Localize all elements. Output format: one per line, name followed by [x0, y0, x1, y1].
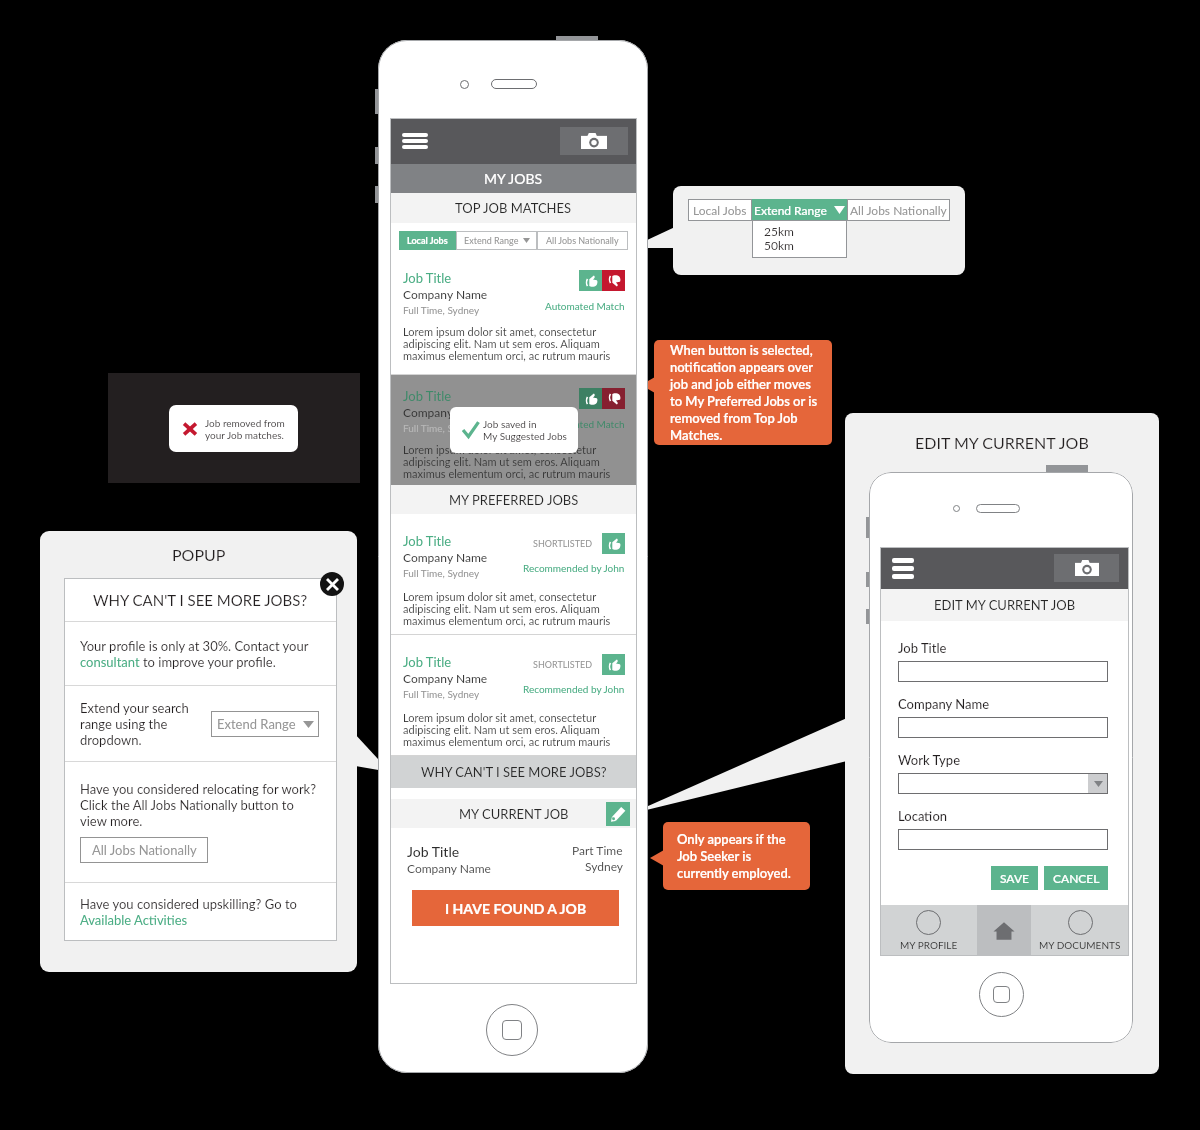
- staticText: WHY CAN'T I SEE MORE JOBS?: [421, 764, 607, 780]
- button[interactable]: Like job: [579, 270, 602, 291]
- button[interactable]: [898, 661, 1108, 682]
- staticText: Company Name: [407, 861, 491, 875]
- button[interactable]: Dislike job: [602, 270, 625, 291]
- staticText: Local Jobs: [693, 203, 747, 217]
- staticText: EDIT MY CURRENT JOB: [915, 433, 1089, 452]
- staticText: All Jobs Nationally: [850, 203, 947, 217]
- button[interactable]: Camera: [1054, 554, 1119, 582]
- staticText: Lorem ipsum dolor sit amet, consectetur …: [403, 711, 611, 748]
- staticText: MY PROFILE: [900, 939, 958, 951]
- staticText: Full Time, Sydney: [403, 567, 480, 579]
- staticText: Full Time, Sydney: [403, 304, 480, 316]
- button[interactable]: I HAVE FOUND A JOB: [412, 890, 619, 926]
- staticText: Automated Match: [545, 300, 625, 312]
- staticText: MY PREFERRED JOBS: [449, 492, 579, 508]
- staticText: Job saved in: [483, 418, 537, 430]
- button[interactable]: Shortlisted: [602, 654, 625, 675]
- staticText: Extend Range: [754, 203, 827, 217]
- staticText: Extend Range: [217, 716, 296, 732]
- staticText: Lorem ipsum dolor sit amet, consectetur …: [403, 443, 611, 480]
- button[interactable]: Job Title: [390, 375, 637, 485]
- staticText: MY DOCUMENTS: [1039, 939, 1121, 951]
- button[interactable]: Camera: [560, 127, 628, 155]
- button[interactable]: Home: [977, 905, 1031, 956]
- staticText: Company Name: [898, 696, 990, 712]
- staticText: Only appears if the Job Seeker is curren…: [677, 831, 791, 881]
- button[interactable]: MY PREFERRED JOBS: [390, 485, 637, 514]
- button[interactable]: MY DOCUMENTS: [1031, 905, 1129, 956]
- staticText: Part Time: [572, 843, 623, 857]
- button[interactable]: All Jobs Nationally: [847, 199, 950, 221]
- button[interactable]: Menu: [892, 558, 914, 579]
- staticText: All Jobs Nationally: [92, 842, 197, 858]
- button[interactable]: Dislike job: [602, 388, 625, 409]
- staticText: Location: [898, 808, 948, 824]
- staticText: Job Title: [403, 388, 452, 404]
- button[interactable]: [898, 773, 1108, 794]
- staticText: All Jobs Nationally: [546, 235, 619, 246]
- button[interactable]: Extend Range: [456, 231, 537, 250]
- staticText: your Job matches.: [205, 429, 284, 441]
- button[interactable]: All Jobs Nationally: [80, 837, 208, 863]
- staticText: Job Title: [403, 654, 452, 670]
- button[interactable]: All Jobs Nationally: [537, 231, 628, 250]
- staticText: Extend Range: [464, 235, 519, 246]
- staticText: Work Type: [898, 752, 961, 768]
- button[interactable]: Local Jobs: [399, 231, 456, 250]
- button[interactable]: Edit current job: [606, 802, 630, 826]
- staticText: Full Time, Sydney: [403, 422, 480, 434]
- button[interactable]: [898, 829, 1108, 850]
- staticText: Local Jobs: [407, 235, 448, 246]
- button[interactable]: Shortlisted: [602, 533, 625, 554]
- staticText: SHORTLISTED: [533, 538, 593, 549]
- button[interactable]: Close: [320, 572, 344, 596]
- button[interactable]: Job Title: [390, 514, 637, 635]
- button[interactable]: MY PROFILE: [880, 905, 977, 956]
- staticText: My Suggested Jobs: [483, 430, 567, 442]
- button[interactable]: Home: [979, 972, 1024, 1017]
- button[interactable]: [898, 717, 1108, 738]
- button[interactable]: Home: [486, 1004, 538, 1056]
- staticText: Company Name: [403, 550, 488, 564]
- staticText: Job Title: [403, 533, 452, 549]
- staticText: Recommended by John: [523, 683, 625, 695]
- staticText: Lorem ipsum dolor sit amet, consectetur …: [403, 325, 611, 362]
- staticText: Lorem ipsum dolor sit amet, consectetur …: [403, 590, 611, 627]
- staticText: Job Title: [407, 843, 460, 860]
- staticText: Your profile is only at 30%. Contact you…: [80, 638, 309, 670]
- staticText: When button is selected, notification ap…: [670, 342, 818, 443]
- staticText: CANCEL: [1053, 871, 1100, 885]
- staticText: Job Title: [403, 270, 452, 286]
- staticText: TOP JOB MATCHES: [455, 200, 572, 216]
- staticText: 25km: [764, 224, 794, 238]
- staticText: Job removed from: [205, 417, 285, 429]
- button[interactable]: Extend Range: [211, 711, 319, 737]
- button[interactable]: Extend Range: [752, 199, 847, 221]
- staticText: SAVE: [1000, 871, 1029, 885]
- staticText: Extend your search range using the dropd…: [80, 700, 189, 748]
- staticText: POPUP: [172, 545, 226, 564]
- staticText: MY CURRENT JOB: [459, 806, 569, 822]
- button[interactable]: Local Jobs: [688, 199, 752, 221]
- staticText: Sydney: [585, 859, 623, 873]
- button[interactable]: SAVE: [991, 866, 1038, 890]
- staticText: Full Time, Sydney: [403, 688, 480, 700]
- button[interactable]: Menu: [402, 133, 428, 149]
- button[interactable]: Job Title: [390, 635, 637, 756]
- button[interactable]: Job Title: [390, 257, 637, 375]
- staticText: Company Name: [403, 405, 488, 419]
- staticText: EDIT MY CURRENT JOB: [934, 597, 1076, 613]
- button[interactable]: WHY CAN'T I SEE MORE JOBS?: [390, 756, 637, 788]
- staticText: Job Title: [898, 640, 947, 656]
- staticText: Company Name: [403, 287, 488, 301]
- staticText: SHORTLISTED: [533, 659, 593, 670]
- staticText: 50km: [764, 238, 794, 252]
- staticText: Have you considered upskilling? Go to Av…: [80, 896, 297, 928]
- button[interactable]: CANCEL: [1044, 866, 1108, 890]
- button[interactable]: Like job: [579, 388, 602, 409]
- staticText: Have you considered relocating for work?…: [80, 781, 317, 829]
- staticText: MY JOBS: [484, 170, 543, 187]
- staticText: I HAVE FOUND A JOB: [445, 900, 587, 917]
- staticText: Company Name: [403, 671, 488, 685]
- staticText: Automated Match: [545, 418, 625, 430]
